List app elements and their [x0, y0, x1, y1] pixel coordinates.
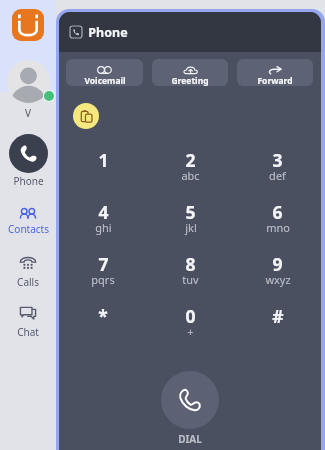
button[interactable]: 1: [59, 144, 147, 196]
staticText: Calls: [17, 275, 39, 289]
button[interactable]: 4: [59, 196, 147, 248]
staticText: ghi: [95, 220, 112, 235]
staticText: Phone: [88, 24, 128, 41]
staticText: 0: [185, 304, 196, 328]
button[interactable]: 8: [147, 248, 234, 300]
staticText: wxyz: [265, 272, 291, 287]
staticText: pqrs: [91, 272, 115, 287]
button[interactable]: Calls: [0, 256, 56, 289]
staticText: tuv: [182, 272, 199, 287]
staticText: Forward: [257, 75, 293, 86]
button[interactable]: Contacts: [0, 207, 56, 236]
button[interactable]: 5: [147, 196, 234, 248]
staticText: 6: [272, 200, 283, 224]
staticText: def: [269, 168, 286, 183]
staticText: #: [272, 304, 284, 328]
staticText: DIAL: [178, 432, 202, 446]
staticText: 9: [272, 252, 283, 276]
button[interactable]: 0: [147, 300, 234, 352]
staticText: jkl: [185, 220, 197, 235]
staticText: 4: [98, 200, 109, 224]
button[interactable]: Profile: [7, 60, 50, 103]
staticText: *: [98, 304, 108, 328]
button[interactable]: 3: [234, 144, 321, 196]
button[interactable]: Dial: [161, 371, 219, 429]
staticText: abc: [181, 168, 200, 183]
staticText: Greeting: [171, 75, 209, 86]
staticText: 7: [98, 252, 109, 276]
staticText: 5: [185, 200, 196, 224]
button[interactable]: #: [234, 300, 321, 352]
button[interactable]: *: [59, 300, 147, 352]
button[interactable]: Phone: [0, 134, 56, 188]
staticText: Contacts: [8, 222, 49, 236]
staticText: 2: [185, 148, 196, 172]
staticText: 3: [272, 148, 283, 172]
button[interactable]: 7: [59, 248, 147, 300]
button[interactable]: 2: [147, 144, 234, 196]
staticText: Chat: [17, 325, 39, 339]
button[interactable]: 6: [234, 196, 321, 248]
button[interactable]: Forward: [237, 59, 313, 86]
staticText: V: [25, 106, 31, 120]
button[interactable]: App logo: [12, 9, 44, 41]
staticText: Voicemail: [84, 75, 126, 86]
button[interactable]: Voicemail: [66, 59, 143, 86]
staticText: 8: [185, 252, 196, 276]
button[interactable]: Greeting: [152, 59, 228, 86]
staticText: +: [187, 324, 194, 339]
staticText: mno: [266, 220, 290, 235]
button[interactable]: Chat: [0, 306, 56, 339]
staticText: Phone: [13, 174, 44, 188]
button[interactable]: 9: [234, 248, 321, 300]
button[interactable]: Paste number: [73, 103, 99, 129]
staticText: 1: [98, 148, 109, 172]
